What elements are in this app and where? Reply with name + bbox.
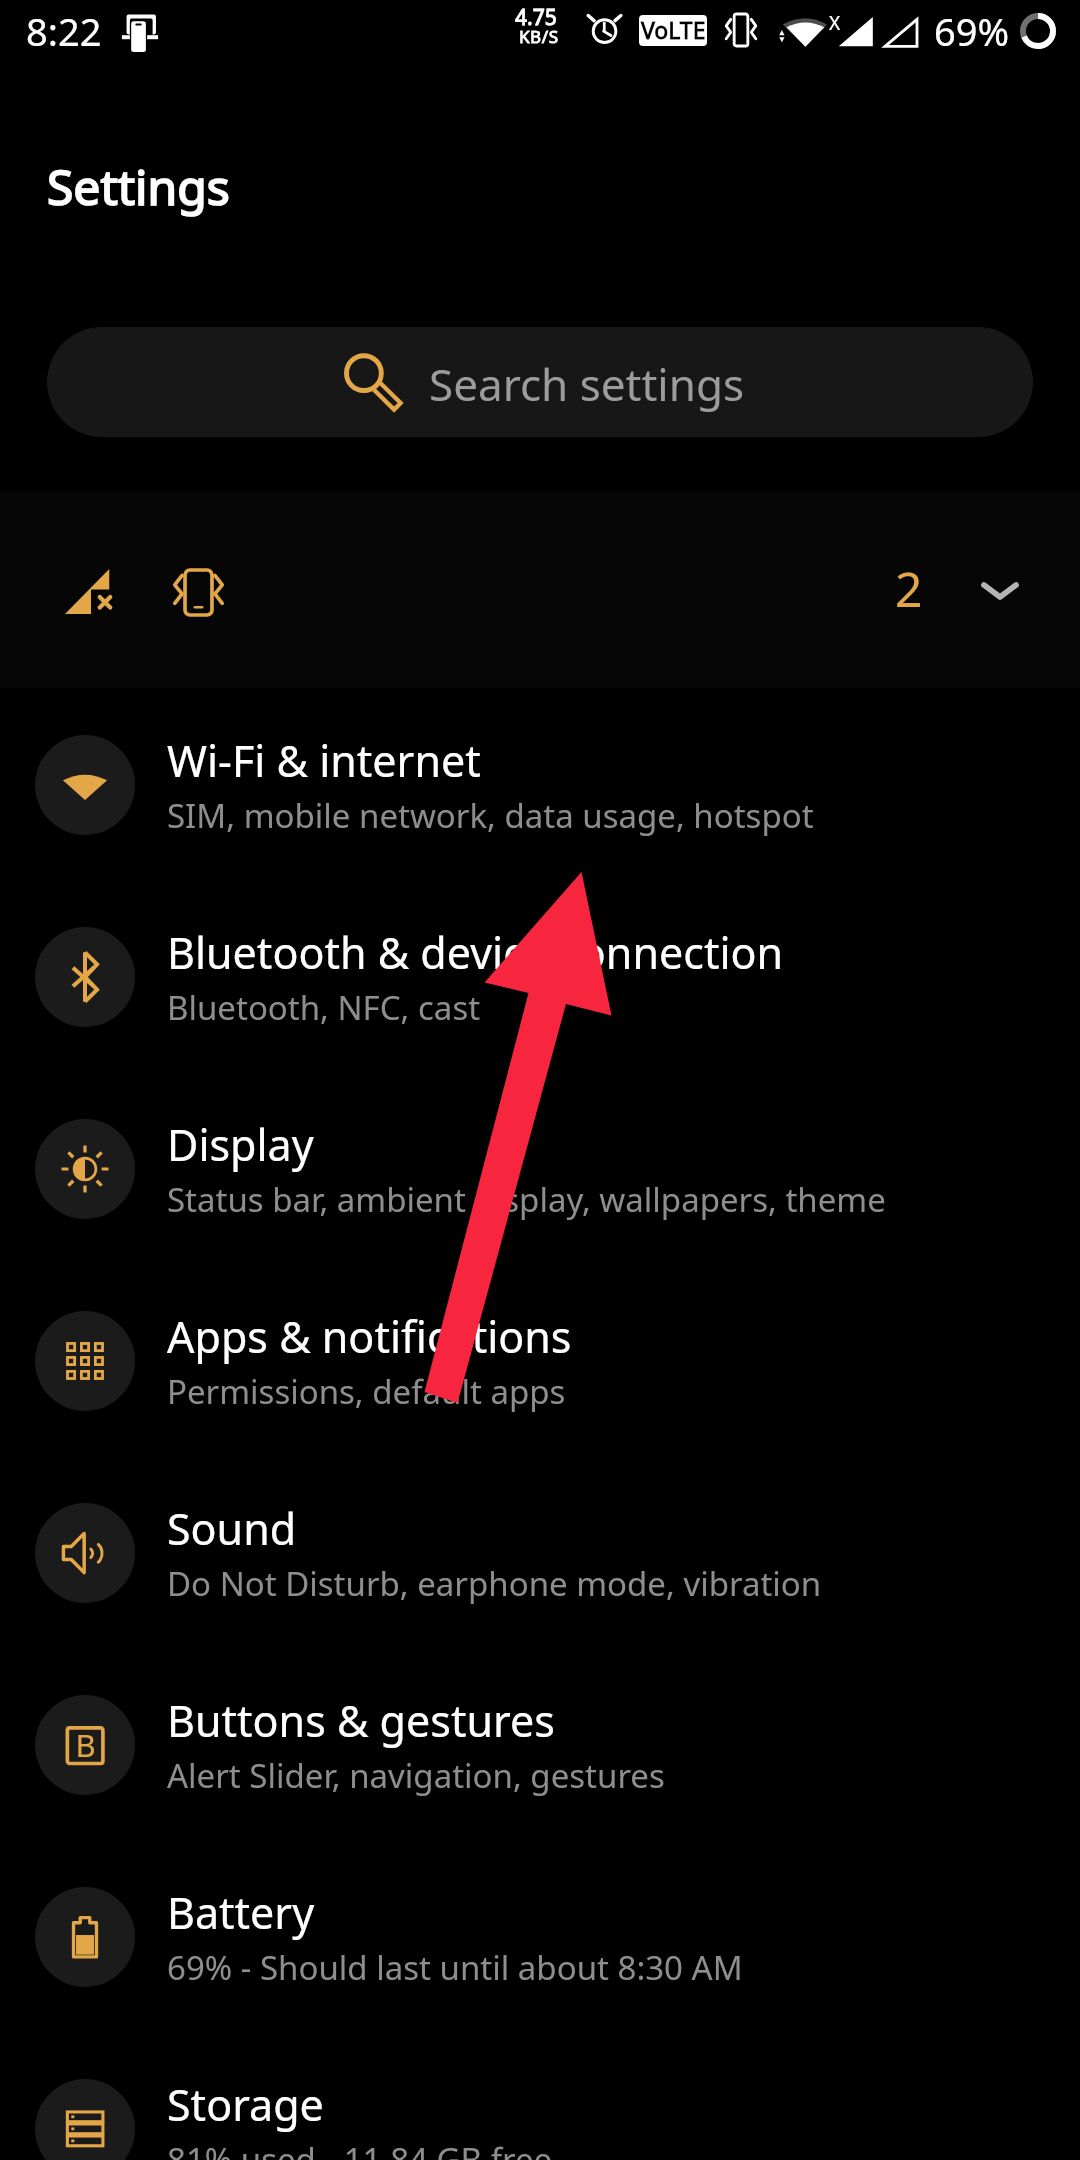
staticText: 8:22 <box>26 5 102 57</box>
button[interactable]: Battery <box>0 1841 1080 2033</box>
other: No service <box>834 11 874 49</box>
staticText: VoLTE <box>641 15 706 45</box>
other: Vibrate <box>722 11 760 49</box>
other: Alarm set <box>586 9 622 45</box>
staticText: Wi-Fi & internet <box>167 731 481 790</box>
staticText: Bluetooth & device connection <box>167 923 784 982</box>
button[interactable]: Apps & notifications <box>0 1265 1080 1457</box>
other: Search <box>336 353 398 415</box>
staticText: KB/S <box>519 25 559 48</box>
staticText: X <box>829 10 841 36</box>
staticText: Buttons & gestures <box>167 1691 555 1750</box>
button[interactable]: Search <box>47 327 1033 437</box>
other: No SIM card <box>65 569 115 614</box>
staticText: SIM, mobile network, data usage, hotspot <box>167 793 814 838</box>
button[interactable]: Wi-Fi & internet <box>0 689 1080 881</box>
button[interactable]: Sound <box>0 1457 1080 1649</box>
staticText: Display <box>167 1115 314 1174</box>
staticText: Battery <box>167 1883 315 1942</box>
staticText: Sound <box>167 1499 297 1558</box>
other: Wi-Fi <box>779 11 827 49</box>
button[interactable]: Display <box>0 1073 1080 1265</box>
staticText: 4.75 <box>515 3 557 32</box>
staticText: Apps & notifications <box>167 1307 572 1366</box>
button[interactable]: Bluetooth & device connection <box>0 881 1080 1073</box>
other: Signal <box>881 11 921 49</box>
button[interactable]: B <box>0 1649 1080 1841</box>
staticText: Status bar, ambient display, wallpapers,… <box>167 1177 886 1222</box>
staticText: Alert Slider, navigation, gestures <box>167 1753 665 1798</box>
staticText: 69% - Should last until about 8:30 AM <box>167 1945 743 1990</box>
staticText: 69% <box>934 5 1010 57</box>
staticText: B <box>75 1724 96 1766</box>
staticText: Storage <box>167 2075 324 2134</box>
staticText: Do Not Disturb, earphone mode, vibration <box>167 1561 822 1606</box>
staticText: 81% used - 11.84 GB free <box>167 2137 553 2160</box>
other: Expand <box>975 565 1025 615</box>
staticText: Permissions, default apps <box>167 1369 566 1414</box>
staticText: 2 <box>895 556 923 621</box>
other: Battery 69% <box>1020 13 1056 49</box>
staticText: Search settings <box>429 354 745 414</box>
button[interactable]: Settings <box>0 100 1080 220</box>
button[interactable]: No SIM card <box>0 491 1080 688</box>
other: Vibrate <box>174 570 223 615</box>
staticText: Settings <box>47 154 230 219</box>
button[interactable]: Storage <box>0 2033 1080 2160</box>
staticText: Bluetooth, NFC, cast <box>167 985 481 1030</box>
other: Screen cast <box>119 12 161 52</box>
